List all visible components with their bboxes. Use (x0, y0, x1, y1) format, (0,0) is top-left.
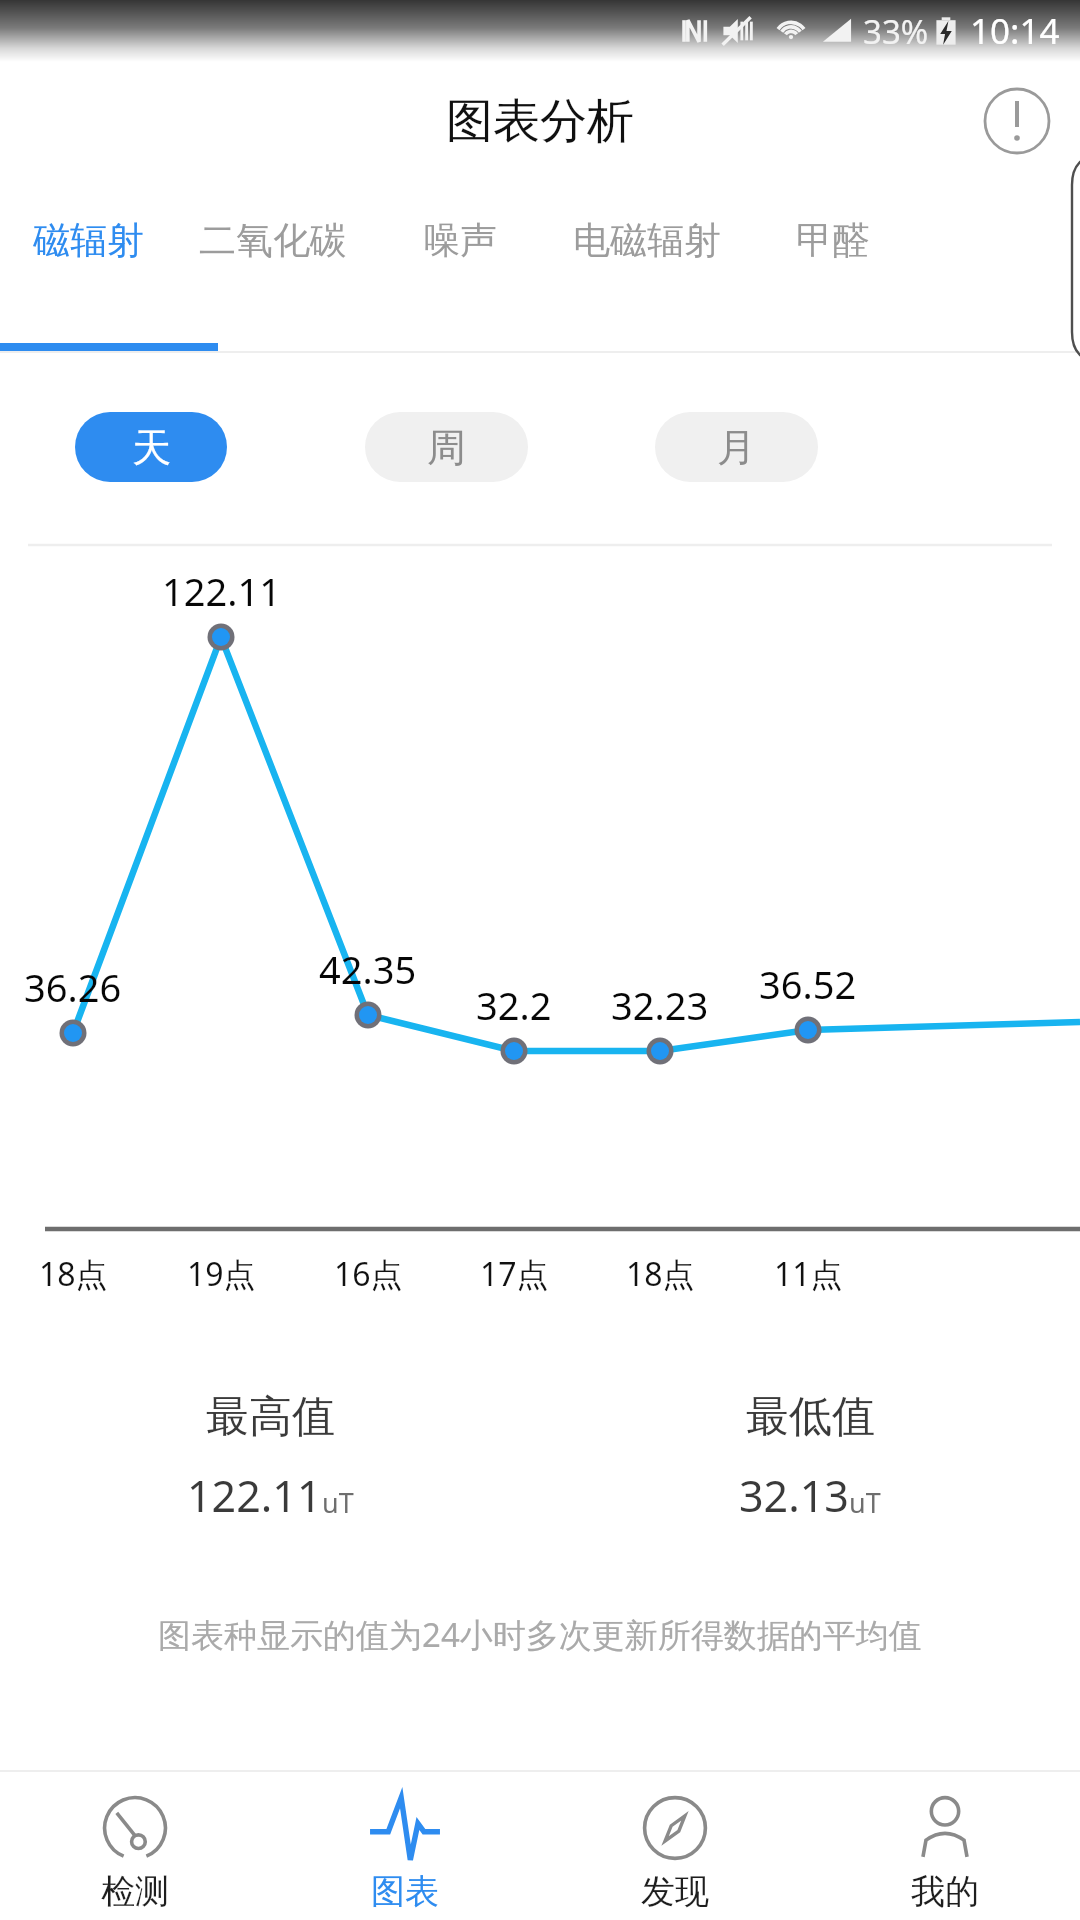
staticText: 电磁辐射 (573, 217, 721, 264)
staticText: uT (849, 1484, 881, 1521)
button[interactable]: 天 (75, 412, 227, 482)
staticText: 122.11 (162, 565, 281, 617)
button[interactable]: 噪声 (385, 185, 535, 295)
staticText: 天 (132, 423, 171, 472)
staticText: 甲醛 (796, 217, 870, 264)
button[interactable]: 周 (365, 412, 528, 482)
button[interactable]: 磁辐射 (0, 185, 183, 295)
staticText: 图表 (371, 1870, 439, 1913)
staticText: 噪声 (423, 217, 497, 264)
staticText: 二氧化碳 (199, 217, 347, 264)
staticText: 我的 (911, 1870, 979, 1913)
button[interactable]: 检测 (0, 1772, 270, 1920)
staticText: 图表种显示的值为24小时多次更新所得数据的平均值 (158, 1612, 922, 1657)
staticText: 16点 (334, 1252, 403, 1296)
staticText: 磁辐射 (33, 217, 144, 264)
button[interactable]: 发现 (540, 1772, 810, 1920)
staticText: 最低值 (746, 1390, 875, 1444)
staticText: 122.11 (187, 1466, 322, 1525)
staticText: 33% (863, 9, 929, 54)
staticText: 36.52 (759, 958, 857, 1010)
staticText: 32.13 (739, 1466, 849, 1525)
staticText: 检测 (101, 1870, 169, 1913)
staticText: 42.35 (319, 943, 417, 995)
button[interactable]: 甲醛 (753, 185, 913, 295)
staticText: 发现 (641, 1870, 709, 1913)
button[interactable]: 二氧化碳 (158, 185, 388, 295)
staticText: 17点 (480, 1252, 549, 1296)
button[interactable]: 月 (655, 412, 818, 482)
staticText: 周 (427, 423, 466, 472)
staticText: 36.26 (24, 961, 122, 1013)
button[interactable]: 我的 (810, 1772, 1080, 1920)
button[interactable]: 说明 (970, 74, 1064, 168)
staticText: 10:14 (970, 7, 1060, 55)
staticText: 32.23 (611, 979, 709, 1031)
button[interactable]: 图表 (270, 1772, 540, 1920)
staticText: 32.2 (476, 979, 552, 1031)
staticText: uT (322, 1484, 354, 1521)
button[interactable]: 电磁辐射 (532, 185, 762, 295)
staticText: 图表分析 (446, 92, 634, 151)
staticText: 月 (717, 423, 756, 472)
staticText: 18点 (39, 1252, 108, 1296)
staticText: 18点 (626, 1252, 695, 1296)
staticText: 最高值 (206, 1390, 335, 1444)
staticText: 19点 (187, 1252, 256, 1296)
staticText: 11点 (774, 1252, 843, 1296)
